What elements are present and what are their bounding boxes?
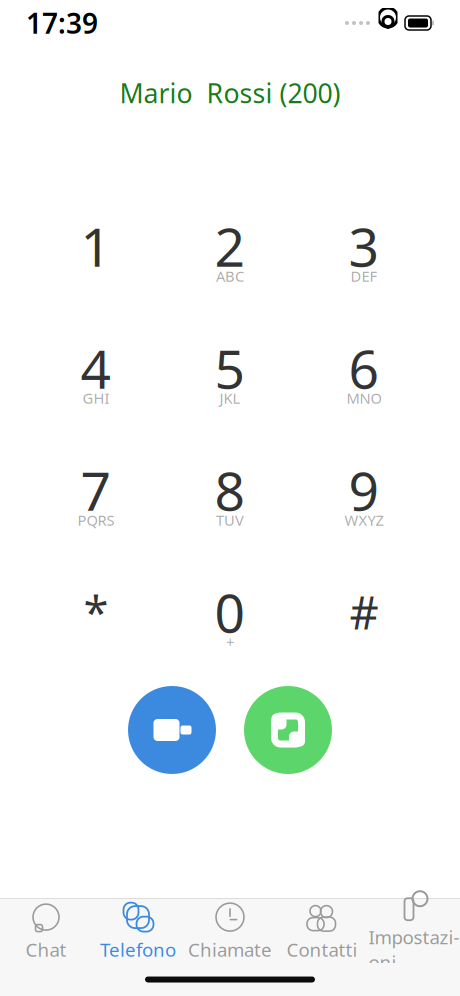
button[interactable]: 1	[41, 216, 151, 290]
staticText: MNO	[346, 388, 381, 408]
staticText: ABC	[216, 266, 244, 286]
staticText: 8	[214, 455, 245, 525]
staticText: 0	[214, 577, 245, 647]
button[interactable]: Chiamate	[184, 900, 276, 962]
button[interactable]: Telefono	[92, 900, 184, 962]
staticText: 2	[214, 211, 245, 281]
button[interactable]: 9	[309, 460, 419, 534]
staticText: DEF	[350, 266, 377, 286]
staticText: +	[226, 632, 234, 652]
button[interactable]: *	[41, 582, 151, 656]
button[interactable]: 3	[309, 216, 419, 290]
button[interactable]: 7	[41, 460, 151, 534]
staticText: *	[83, 582, 108, 642]
button[interactable]: Contatti	[276, 900, 368, 962]
staticText: Telefono	[100, 937, 176, 962]
staticText: 1	[80, 211, 111, 281]
staticText: TUV	[216, 510, 244, 530]
staticText: #	[349, 582, 378, 642]
staticText: 7	[80, 455, 111, 525]
button[interactable]: Chiama	[244, 686, 332, 774]
staticText	[94, 266, 98, 286]
button[interactable]: #	[309, 582, 419, 656]
staticText: PQRS	[77, 510, 114, 530]
button[interactable]: 6	[309, 338, 419, 412]
button[interactable]: 2	[175, 216, 285, 290]
staticText: JKL	[219, 388, 240, 408]
staticText: WXYZ	[344, 510, 383, 530]
button[interactable]: Impostazioni	[368, 900, 460, 962]
staticText: Chiamate	[188, 937, 272, 962]
button[interactable]: 0	[175, 582, 285, 656]
button[interactable]: 8	[175, 460, 285, 534]
staticText: 3	[348, 211, 379, 281]
button[interactable]: 5	[175, 338, 285, 412]
staticText: 17:39	[26, 4, 98, 42]
staticText: Mario Rossi (200)	[119, 75, 340, 111]
staticText: 4	[80, 333, 111, 403]
button[interactable]: Videochiamata	[128, 686, 216, 774]
staticText: 6	[348, 333, 379, 403]
staticText: Contatti	[286, 937, 357, 962]
button[interactable]: Chat	[0, 900, 92, 962]
staticText: GHI	[82, 388, 109, 408]
staticText: 9	[348, 455, 379, 525]
staticText: 5	[214, 333, 245, 403]
staticText: Impostazioni	[368, 925, 459, 974]
button[interactable]: 4	[41, 338, 151, 412]
staticText: Chat	[25, 937, 66, 962]
